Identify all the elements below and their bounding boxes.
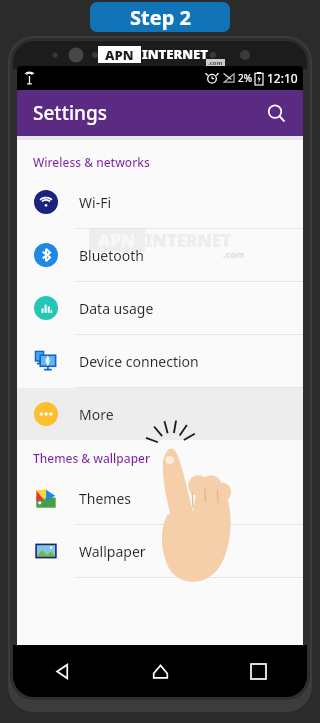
staticText: .com xyxy=(223,248,245,260)
button[interactable]: Home xyxy=(111,645,209,697)
staticText: INTERNET xyxy=(145,229,232,252)
button[interactable]: Wi-Fi xyxy=(17,176,303,228)
button[interactable]: Wallpaper xyxy=(17,525,303,577)
staticText: INTERNET xyxy=(142,45,208,63)
staticText: More xyxy=(79,405,114,424)
button[interactable]: Step 2 xyxy=(90,2,230,32)
staticText: Wallpaper xyxy=(79,542,146,561)
staticText: Bluetooth xyxy=(79,246,144,265)
button[interactable]: Search xyxy=(259,96,293,130)
staticText: Device connection xyxy=(79,352,199,371)
staticText: APN xyxy=(98,229,136,252)
button[interactable]: Back xyxy=(13,645,111,697)
button[interactable]: More xyxy=(17,388,303,440)
staticText: Themes & wallpaper xyxy=(33,450,151,466)
staticText: Settings xyxy=(33,100,107,126)
button[interactable]: Device connection xyxy=(17,335,303,387)
staticText: 12:10 xyxy=(267,70,298,86)
button[interactable]: Settings xyxy=(17,90,303,136)
button[interactable]: Data usage xyxy=(17,282,303,334)
staticText: Data usage xyxy=(79,299,154,318)
staticText: APN xyxy=(105,46,134,63)
button[interactable]: Recents xyxy=(209,645,307,697)
button[interactable]: Bluetooth xyxy=(17,229,303,281)
staticText: Step 2 xyxy=(130,4,191,31)
staticText: Wireless & networks xyxy=(33,154,150,170)
staticText: 2% xyxy=(238,71,253,85)
staticText: Themes xyxy=(79,489,132,508)
button[interactable]: Themes xyxy=(17,472,303,524)
staticText: .com xyxy=(208,59,223,67)
staticText: Wi-Fi xyxy=(79,193,112,212)
